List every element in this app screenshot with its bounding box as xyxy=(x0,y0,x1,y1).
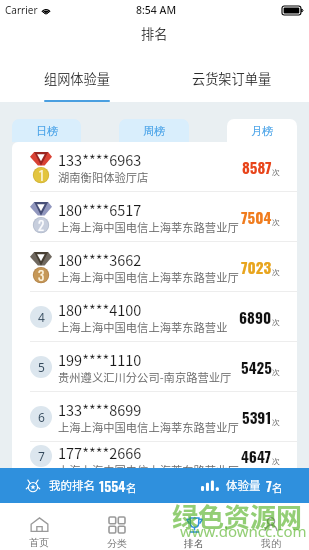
staticText: 上海上海中国电信上海莘东路营业厅 xyxy=(58,269,239,285)
button[interactable]: 分类 xyxy=(78,503,155,550)
staticText: 湖南衡阳体验厅店 xyxy=(58,169,149,185)
staticText: 次 xyxy=(272,367,280,377)
staticText: 日榜 xyxy=(36,124,58,138)
staticText: 180****6517 xyxy=(58,199,142,220)
staticText: 6 xyxy=(38,409,45,425)
button[interactable]: 日榜 xyxy=(12,119,81,142)
button[interactable]: 1 xyxy=(12,142,297,192)
staticText: 排名 xyxy=(184,537,204,550)
staticText: 上海上海中国电信上海莘东路营业厅 xyxy=(58,219,239,235)
staticText: 分类 xyxy=(107,537,127,550)
staticText: 体验量 xyxy=(226,477,261,494)
staticText: 次 xyxy=(272,267,280,277)
button[interactable]: 4 xyxy=(12,292,297,342)
staticText: 次 xyxy=(272,456,280,466)
staticText: 上海上海中国电信上海莘东路营业厅 xyxy=(58,319,237,335)
staticText: 7 xyxy=(38,448,45,464)
staticText: 2 xyxy=(38,215,45,234)
button[interactable]: 组网体验量 xyxy=(0,48,154,102)
staticText: 次 xyxy=(272,217,280,227)
staticText: 组网体验量 xyxy=(44,69,110,88)
staticText: 4 xyxy=(38,309,45,325)
button[interactable]: 月榜 xyxy=(227,119,297,142)
other: 体验量 xyxy=(201,480,220,491)
staticText: 云货架订单量 xyxy=(192,69,272,88)
staticText: 月榜 xyxy=(251,124,273,138)
button[interactable]: 3 xyxy=(12,242,297,292)
staticText: 上海上海中国电信上海莘东路营业厅 xyxy=(58,462,239,468)
button[interactable]: 首页 xyxy=(0,503,78,550)
staticText: 绿色资源网 xyxy=(172,497,303,535)
button[interactable]: 2 xyxy=(12,192,297,242)
staticText: www.downcc.com xyxy=(180,521,307,541)
staticText: 8:54 AM xyxy=(136,3,177,17)
staticText: 6890 xyxy=(239,306,272,328)
button[interactable]: 周榜 xyxy=(119,119,189,142)
staticText: 上海上海中国电信上海莘东路营业厅 xyxy=(58,419,239,435)
staticText: 7 xyxy=(266,475,272,496)
staticText: 180****3662 xyxy=(58,249,142,270)
staticText: 1554 xyxy=(99,475,126,496)
button[interactable]: 云货架订单量 xyxy=(154,48,309,102)
staticText: 7504 xyxy=(241,206,272,228)
staticText: 我的排名 xyxy=(49,477,95,494)
other: 我的排名 xyxy=(26,479,40,493)
staticText: 名 xyxy=(272,480,283,495)
staticText: 周榜 xyxy=(143,124,165,138)
button[interactable]: 我的 xyxy=(232,503,309,550)
staticText: 名 xyxy=(126,480,137,495)
staticText: 首页 xyxy=(29,536,49,549)
staticText: 5 xyxy=(38,359,45,375)
staticText: 199****1110 xyxy=(58,349,142,370)
staticText: 180****4100 xyxy=(58,299,142,320)
staticText: 次 xyxy=(272,167,280,177)
button[interactable]: 5 xyxy=(12,342,297,392)
button[interactable]: 7 xyxy=(12,442,297,469)
button[interactable]: 6 xyxy=(12,392,297,442)
staticText: 贵州遵义汇川分公司-南京路营业厅 xyxy=(58,369,232,385)
staticText: Carrier xyxy=(5,3,38,17)
staticText: 我的 xyxy=(261,537,281,550)
staticText: 7023 xyxy=(241,256,272,278)
staticText: 次 xyxy=(272,417,280,427)
staticText: 8587 xyxy=(242,156,272,178)
staticText: 4647 xyxy=(241,445,272,467)
button[interactable]: 排名 xyxy=(155,503,232,550)
staticText: 次 xyxy=(272,317,280,327)
staticText: 133****8699 xyxy=(58,399,142,420)
staticText: 133****6963 xyxy=(58,149,142,170)
staticText: 177****2666 xyxy=(58,442,142,463)
staticText: 5425 xyxy=(241,356,272,378)
staticText: 1 xyxy=(39,165,44,184)
staticText: 3 xyxy=(38,265,45,284)
staticText: 排名 xyxy=(141,24,168,43)
staticText: 5391 xyxy=(242,406,272,428)
